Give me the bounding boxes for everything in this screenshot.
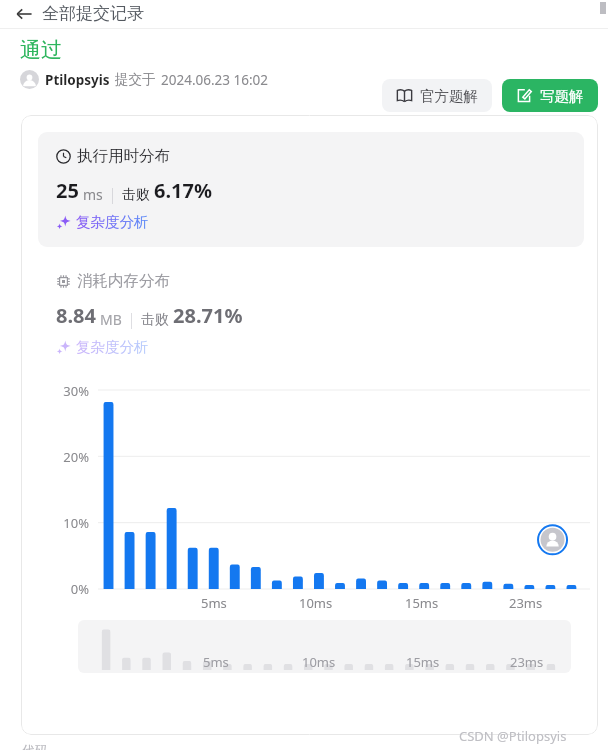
staticText: 15ms [405,594,439,612]
button[interactable]: 写题解 [502,79,598,112]
staticText: 代码 [22,742,48,750]
staticText: 全部提交记录 [42,3,144,24]
staticText: 2024.06.23 16:02 [161,71,269,89]
staticText: 25 [56,177,79,204]
staticText: 通过 [20,37,62,63]
button[interactable]: 复杂度分析 [56,213,149,231]
staticText: 15ms [406,653,440,671]
staticText: 6.17% [154,177,212,204]
staticText: 官方题解 [420,87,478,104]
staticText: 写题解 [540,87,584,104]
staticText: 23ms [510,653,544,671]
button[interactable]: 5ms [78,620,571,673]
staticText: 10ms [299,594,333,612]
staticText: 击败 [141,311,169,329]
staticText: 23ms [509,594,543,612]
staticText: 20% [21,448,89,466]
staticText: 执行用时分布 [77,146,170,166]
staticText: MB [100,310,122,329]
button[interactable]: 消耗内存分布 [56,271,584,356]
button[interactable]: 执行用时分布 [38,132,584,247]
staticText: 复杂度分析 [76,338,149,356]
staticText: 消耗内存分布 [77,271,170,291]
staticText: 0% [21,580,89,598]
button[interactable]: Back [8,1,40,27]
staticText: 10% [21,514,89,532]
staticText: 5ms [201,594,227,612]
staticText: 28.71% [173,302,243,329]
staticText: 复杂度分析 [76,213,149,231]
staticText: CSDN @Ptilopsyis [459,727,567,745]
staticText: 10ms [302,653,336,671]
staticText: 5ms [203,653,229,671]
staticText: ms [83,185,103,204]
staticText: Ptilopsyis [45,71,110,89]
staticText: 8.84 [56,302,96,329]
staticText: 30% [21,382,89,400]
button[interactable]: 官方题解 [382,79,492,112]
button[interactable]: 复杂度分析 [56,338,149,356]
staticText: 击败 [122,186,150,204]
staticText: 提交于 [115,71,156,88]
